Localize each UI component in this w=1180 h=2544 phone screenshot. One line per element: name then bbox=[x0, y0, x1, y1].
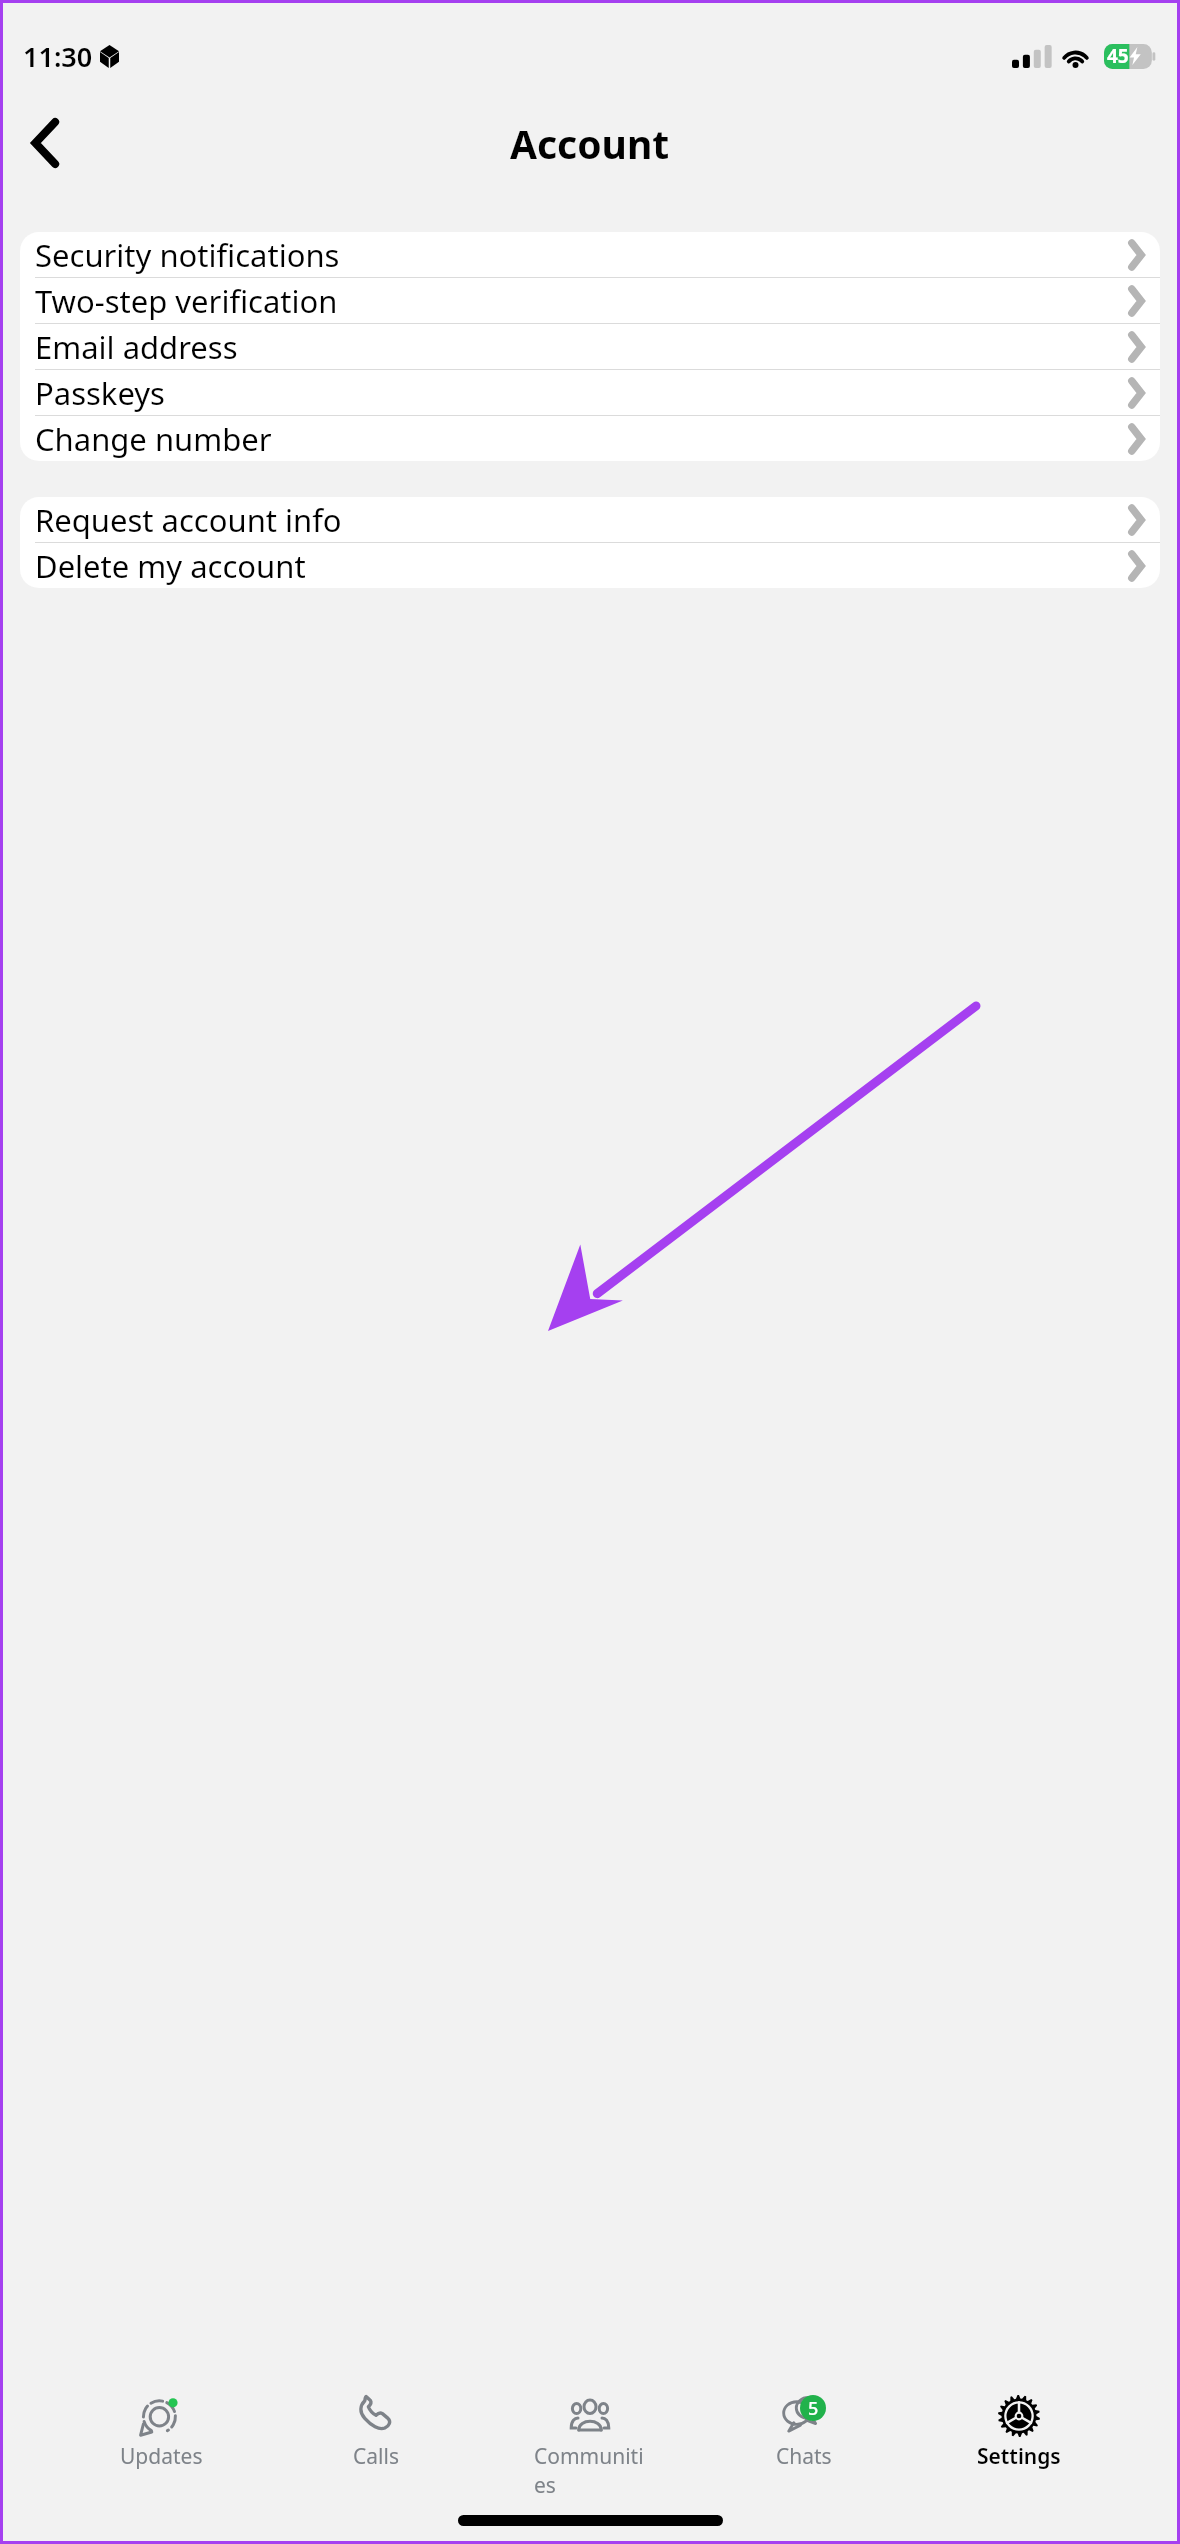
staticText: Change number bbox=[35, 418, 1130, 460]
staticText: Two-step verification bbox=[35, 280, 1130, 322]
button[interactable]: Passkeys bbox=[20, 370, 1160, 415]
button[interactable]: Calls bbox=[320, 2395, 432, 2471]
staticText: Account bbox=[510, 117, 670, 170]
staticText: Passkeys bbox=[35, 372, 1130, 414]
button[interactable]: Security notifications bbox=[20, 232, 1160, 277]
button[interactable]: Updates bbox=[105, 2395, 217, 2471]
staticText: Updates bbox=[120, 2442, 203, 2471]
button[interactable]: Two-step verification bbox=[20, 278, 1160, 323]
staticText: Chats bbox=[776, 2442, 832, 2471]
button[interactable]: Email address bbox=[20, 324, 1160, 369]
button[interactable]: Settings bbox=[963, 2395, 1075, 2471]
staticText: 11:30 bbox=[23, 38, 93, 75]
staticText: Email address bbox=[35, 326, 1130, 368]
staticText: Security notifications bbox=[35, 234, 1130, 276]
staticText: Communities bbox=[534, 2442, 646, 2493]
staticText: Settings bbox=[977, 2442, 1061, 2471]
button[interactable]: Change number bbox=[20, 416, 1160, 461]
staticText: 45 bbox=[1107, 43, 1129, 69]
button[interactable]: Communities bbox=[534, 2395, 646, 2493]
staticText: Calls bbox=[353, 2442, 399, 2471]
button[interactable]: Delete my account bbox=[20, 543, 1160, 588]
button[interactable]: Back bbox=[7, 105, 83, 181]
staticText: Delete my account bbox=[35, 545, 1130, 587]
button[interactable]: 5 bbox=[748, 2395, 860, 2471]
staticText: 5 bbox=[808, 2396, 819, 2421]
staticText: Request account info bbox=[35, 499, 1130, 541]
button[interactable]: Request account info bbox=[20, 497, 1160, 542]
